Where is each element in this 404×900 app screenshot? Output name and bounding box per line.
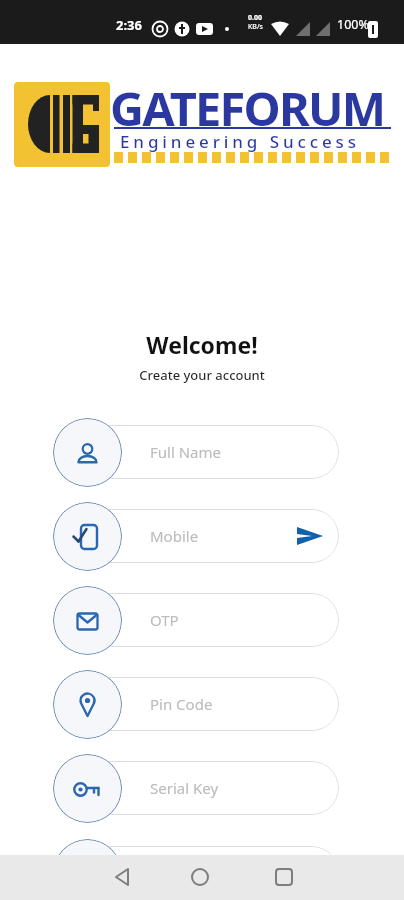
button[interactable] (53, 754, 122, 823)
button[interactable]: Serial Key (55, 761, 339, 815)
button[interactable] (256, 857, 304, 898)
button[interactable] (53, 586, 122, 655)
staticText: 0.00 (248, 13, 262, 23)
staticText: Pin Code (150, 694, 213, 714)
button[interactable] (53, 670, 122, 739)
staticText: GATEFORUM (110, 76, 385, 140)
staticText: 100% (337, 16, 369, 33)
button[interactable] (53, 502, 122, 571)
staticText: Create your account (0, 366, 404, 384)
button[interactable] (176, 857, 224, 898)
button[interactable]: OTP (55, 593, 339, 647)
button[interactable]: Mobile (55, 509, 339, 563)
button[interactable]: Pin Code (55, 677, 339, 731)
staticText: 2:36 (116, 16, 142, 34)
staticText: Full Name (150, 442, 221, 462)
staticText: Engineering Success (120, 130, 360, 153)
button[interactable] (53, 418, 122, 487)
button[interactable] (53, 839, 122, 900)
button[interactable]: Full Name (55, 425, 339, 479)
button[interactable] (96, 857, 144, 898)
staticText: Serial Key (150, 778, 219, 798)
staticText: Welcome! (0, 329, 404, 360)
staticText: Mobile (150, 526, 199, 546)
staticText: KB/s (248, 22, 263, 32)
button[interactable] (55, 846, 339, 900)
staticText: OTP (150, 610, 179, 630)
